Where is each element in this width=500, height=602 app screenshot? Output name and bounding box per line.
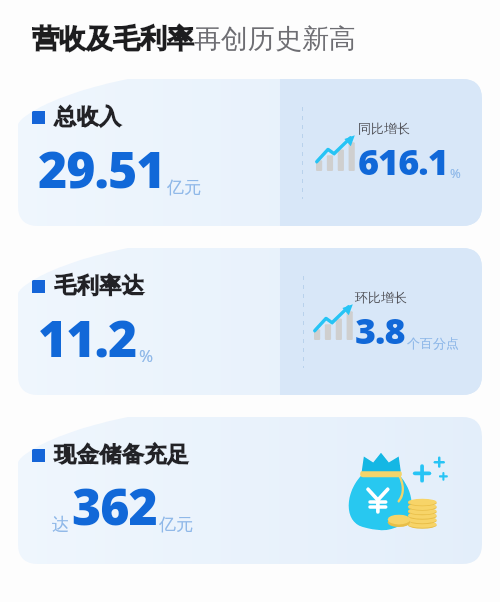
staticText: 11.2 xyxy=(38,304,137,372)
other: Growth trend chart xyxy=(314,304,354,340)
staticText: 达 xyxy=(52,514,69,535)
staticText: 亿元 xyxy=(167,177,201,198)
staticText: 个百分点 xyxy=(407,335,459,351)
staticText: 亿元 xyxy=(159,514,193,535)
staticText: 362 xyxy=(72,472,157,540)
staticText: 现金储备充足 xyxy=(54,441,189,469)
staticText: 29.51 xyxy=(38,135,165,203)
button[interactable]: 毛利率达 xyxy=(18,248,482,395)
staticText: 营收及毛利率 xyxy=(32,22,194,56)
staticText: 616.1 xyxy=(358,137,448,186)
staticText: 3.8 xyxy=(355,306,405,355)
staticText: 毛利率达 xyxy=(54,272,144,300)
staticText: 总收入 xyxy=(54,103,122,131)
staticText: % xyxy=(450,164,461,182)
staticText: 同比增长 xyxy=(358,120,410,136)
other: Cash reserves money bag xyxy=(342,448,446,534)
button[interactable]: 总收入 xyxy=(18,79,482,226)
other: Growth trend chart xyxy=(316,135,356,171)
staticText: 再创历史新高 xyxy=(194,22,356,56)
staticText: % xyxy=(139,344,154,367)
button[interactable]: 现金储备充足 xyxy=(18,417,482,564)
staticText: 环比增长 xyxy=(355,289,407,305)
